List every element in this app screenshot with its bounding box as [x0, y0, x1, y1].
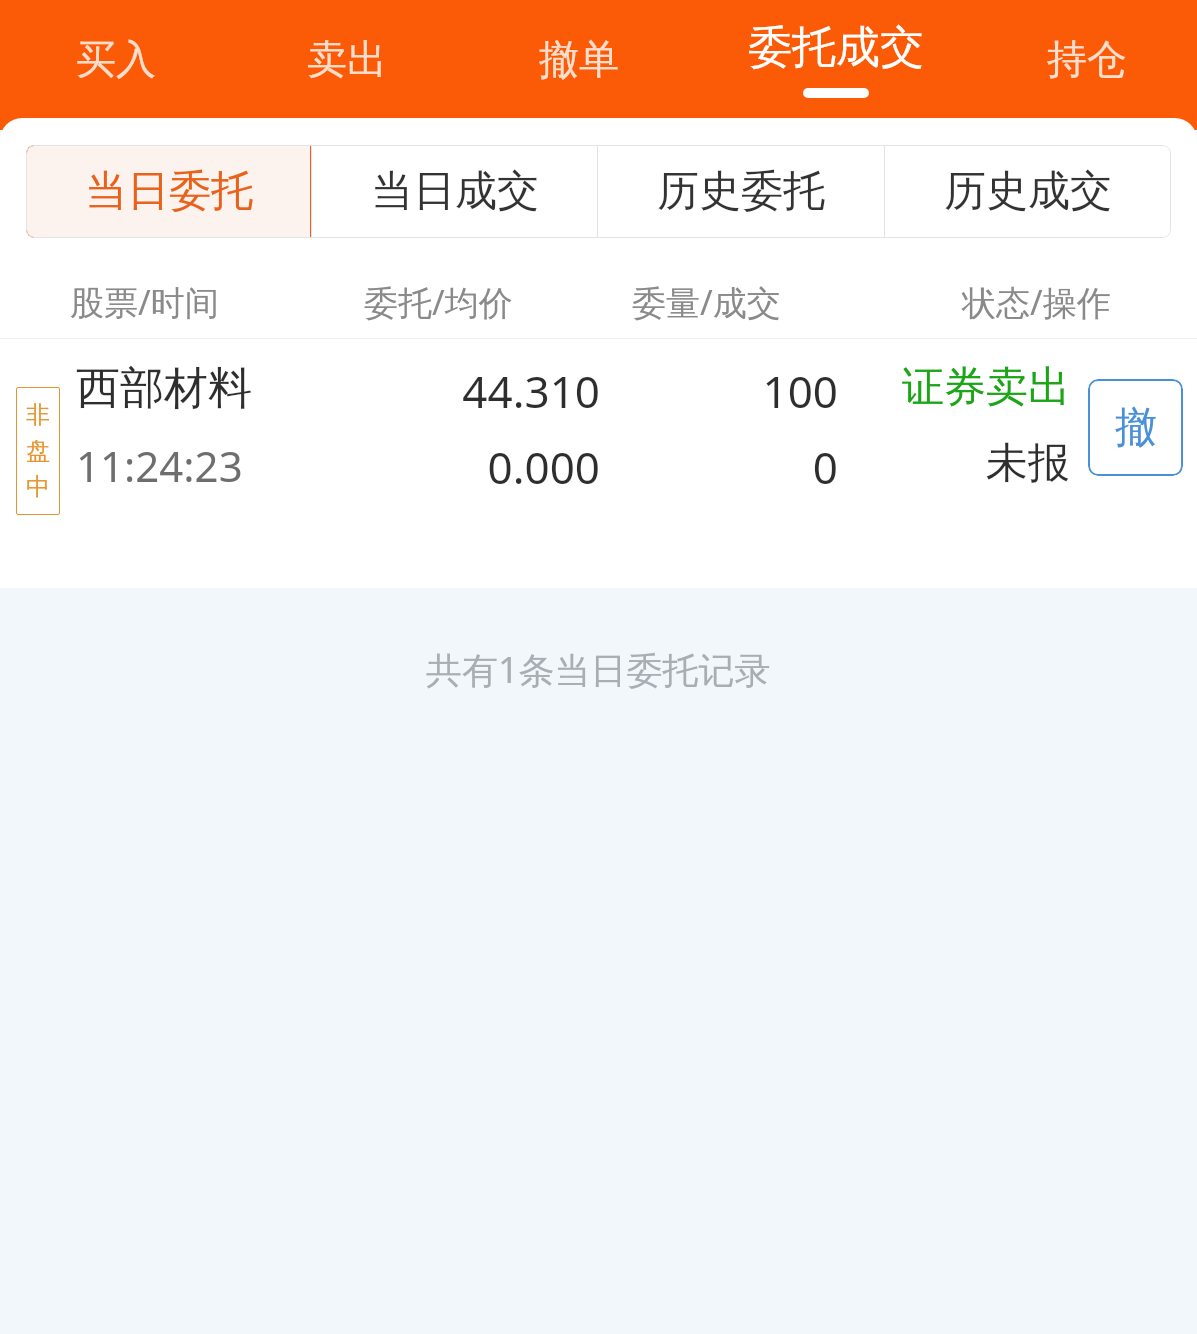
staticText: 证券卖出: [0, 361, 1070, 414]
button[interactable]: 委托成交: [695, 0, 977, 118]
staticText: 当日成交: [371, 165, 539, 218]
staticText: 撤单: [539, 34, 619, 84]
button[interactable]: 撤单: [463, 0, 695, 118]
staticText: 撤: [1115, 401, 1157, 454]
button[interactable]: 买入: [0, 0, 231, 118]
staticText: 股票/时间: [70, 279, 219, 325]
staticText: 44.310: [0, 361, 600, 421]
staticText: 历史成交: [944, 165, 1112, 218]
staticText: 0.000: [0, 437, 600, 497]
staticText: 西部材料: [76, 361, 252, 416]
button[interactable]: 历史委托: [598, 145, 884, 238]
staticText: 未报: [0, 437, 1070, 490]
staticText: 当日委托: [85, 165, 253, 218]
staticText: 中: [26, 472, 50, 502]
staticText: 持仓: [1047, 34, 1127, 84]
staticText: 共有1条当日委托记录: [426, 645, 771, 694]
staticText: 委量/成交: [632, 279, 781, 325]
button[interactable]: 持仓: [977, 0, 1197, 118]
staticText: 委托成交: [748, 20, 924, 75]
staticText: 盘: [26, 436, 50, 466]
staticText: 100: [0, 361, 838, 421]
button[interactable]: 卖出: [231, 0, 463, 118]
staticText: 非: [26, 400, 50, 430]
staticText: 卖出: [307, 34, 387, 84]
staticText: 状态/操作: [962, 279, 1111, 325]
button[interactable]: 撤单: [1088, 379, 1183, 476]
button[interactable]: 历史成交: [885, 145, 1171, 238]
button[interactable]: 当日成交: [312, 145, 597, 238]
staticText: 买入: [76, 34, 156, 84]
staticText: 历史委托: [657, 165, 825, 218]
button[interactable]: 当日委托: [26, 145, 311, 238]
staticText: 0: [0, 437, 838, 497]
staticText: 委托/均价: [364, 279, 513, 325]
button[interactable]: 非: [0, 339, 1197, 563]
staticText: 11:24:23: [76, 437, 243, 494]
